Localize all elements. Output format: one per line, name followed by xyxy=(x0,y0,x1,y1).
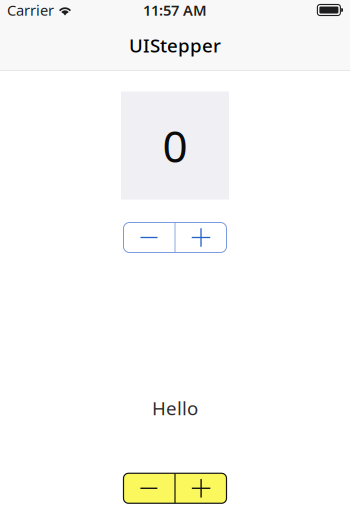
staticText: UIStepper xyxy=(129,33,221,58)
button[interactable]: Increment xyxy=(176,473,227,503)
button[interactable]: Increment xyxy=(175,222,226,252)
staticText: Carrier xyxy=(7,0,54,20)
button[interactable]: Decrement xyxy=(123,222,174,252)
button[interactable]: Decrement xyxy=(123,473,174,503)
staticText: Hello xyxy=(152,395,198,420)
staticText: 11:57 AM xyxy=(143,0,207,20)
staticText: 0 xyxy=(162,116,187,175)
